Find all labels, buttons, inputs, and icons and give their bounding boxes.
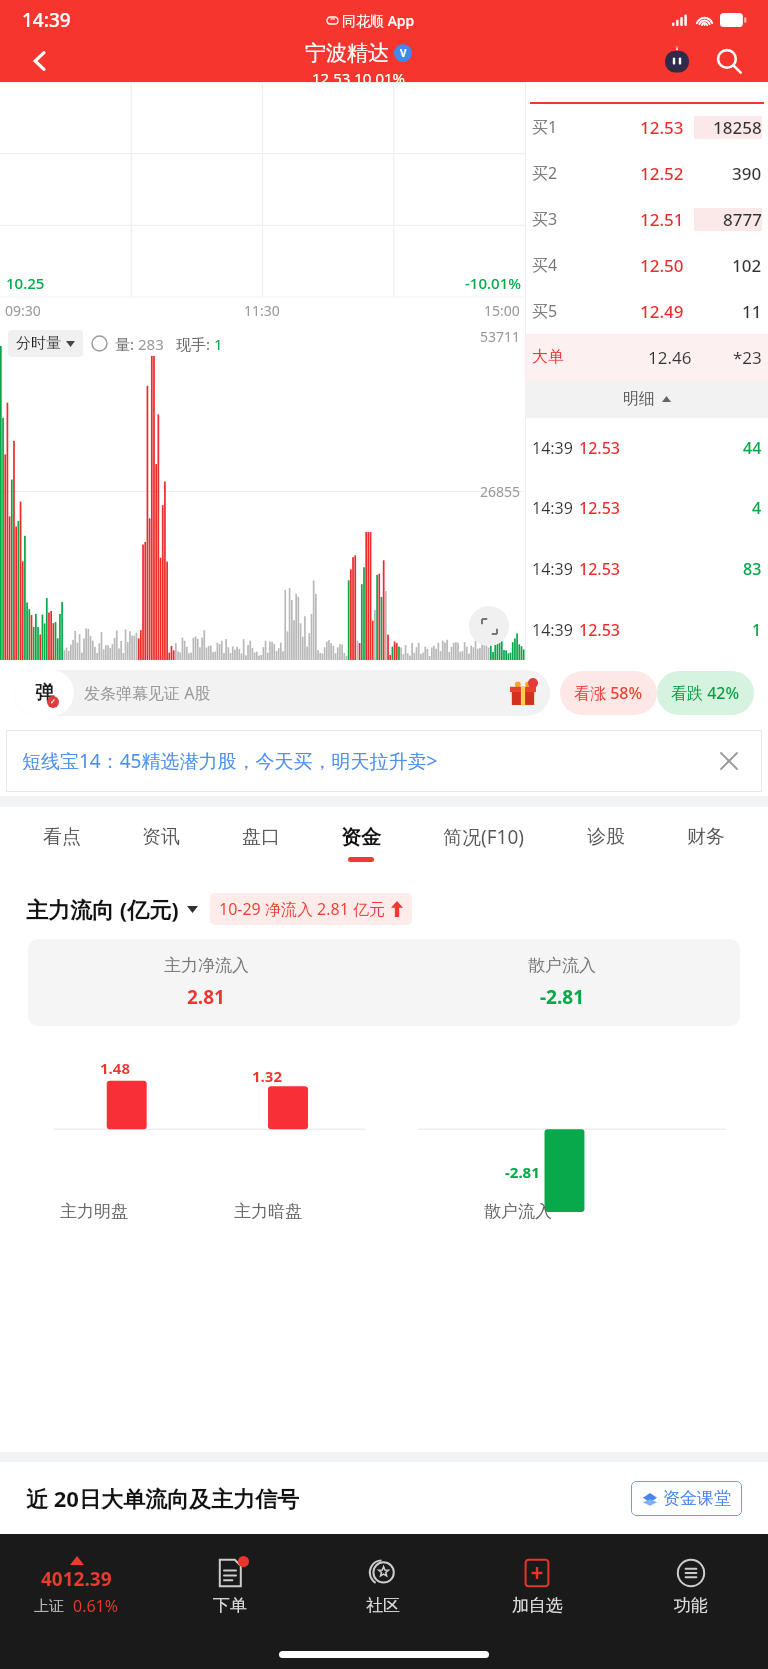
button[interactable]: Fullscreen — [469, 606, 509, 646]
staticText: 14:39 — [532, 558, 573, 580]
staticText: 11 — [742, 300, 762, 323]
button[interactable]: 加自选 — [460, 1534, 614, 1639]
staticText: 0.61% — [73, 1595, 119, 1617]
button[interactable]: Help — [91, 335, 108, 352]
staticText: 功能 — [674, 1595, 708, 1616]
staticText: 买5 — [532, 300, 558, 322]
staticText: 短线宝14：45精选潜力股，今天买，明天拉升卖> — [22, 748, 438, 774]
staticText: 26855 — [480, 482, 521, 501]
staticText: 看点 — [43, 825, 81, 849]
button[interactable]: 盘口 — [211, 807, 311, 879]
staticText: 发条弹幕见证 A股 — [84, 682, 211, 704]
staticText: 1 — [752, 619, 762, 641]
staticText: -2.81 — [540, 984, 585, 1010]
staticText: 看涨 58% — [574, 682, 643, 704]
button[interactable]: 明细 — [526, 380, 768, 418]
staticText: 财务 — [687, 825, 725, 849]
staticText: 看跌 42% — [671, 682, 740, 704]
staticText: 83 — [743, 558, 762, 580]
button[interactable]: 14:39 — [526, 538, 768, 599]
button[interactable]: 买5 — [526, 288, 768, 334]
button[interactable]: 功能 — [614, 1534, 768, 1639]
staticText: 大单 — [532, 347, 564, 367]
button[interactable]: 大单 — [526, 334, 768, 380]
staticText: 4012.39 — [41, 1566, 112, 1592]
staticText: 资金 — [341, 825, 381, 850]
button[interactable]: 4012.39 — [0, 1534, 153, 1639]
staticText: 390 — [732, 162, 762, 185]
staticText: 资金课堂 — [663, 1488, 731, 1509]
staticText: 主力流向 (亿元) — [26, 894, 179, 924]
staticText: 10.25 — [6, 273, 45, 293]
staticText: 4 — [752, 497, 762, 519]
button[interactable]: 买2 — [526, 150, 768, 196]
button[interactable]: 弹 — [14, 670, 550, 716]
button[interactable]: 社区 — [306, 1534, 460, 1639]
button[interactable]: 看跌 42% — [657, 671, 754, 715]
staticText: 283 — [138, 334, 164, 354]
staticText: 12.46 — [648, 346, 692, 369]
staticText: 11:30 — [244, 301, 280, 320]
button[interactable]: 10-29 净流入 2.81 亿元 — [210, 893, 412, 925]
staticText: 12.53 — [579, 619, 620, 641]
staticText: 14:39 — [532, 437, 573, 459]
button[interactable]: 看点 — [12, 807, 111, 879]
staticText: 资讯 — [142, 825, 180, 849]
button[interactable]: 简况(F10) — [411, 807, 556, 879]
button[interactable]: 短线宝14：45精选潜力股，今天买，明天拉升卖> — [6, 730, 762, 792]
button[interactable]: 资金 — [311, 807, 411, 879]
button[interactable]: 诊股 — [556, 807, 656, 879]
button[interactable]: 主力流向 (亿元) — [26, 894, 198, 924]
button[interactable]: 资金课堂 — [631, 1481, 742, 1516]
staticText: 12.50 — [640, 254, 684, 277]
button[interactable]: 分时量 — [8, 330, 83, 357]
staticText: 8777 — [723, 208, 762, 231]
staticText: 12.53 10.01% — [312, 68, 406, 82]
button[interactable]: Search — [708, 40, 750, 82]
staticText: 盘口 — [242, 825, 280, 849]
staticText: 诊股 — [587, 825, 625, 849]
staticText: 加自选 — [512, 1595, 563, 1616]
staticText: 明细 — [623, 389, 655, 409]
staticText: 社区 — [366, 1595, 400, 1616]
staticText: 12.53 — [579, 497, 620, 519]
staticText: 主力净流入 — [164, 955, 249, 976]
staticText: 12.51 — [640, 208, 684, 231]
staticText: 12.49 — [640, 300, 684, 323]
staticText: 1 — [214, 334, 223, 354]
staticText: 1.48 — [100, 1058, 130, 1078]
staticText: 主力明盘 — [60, 1201, 128, 1222]
staticText: 上证 — [34, 1597, 64, 1616]
button[interactable]: AI assistant — [656, 40, 698, 82]
button[interactable]: 14:39 — [526, 418, 768, 478]
staticText: 分时量 — [16, 334, 61, 353]
button[interactable]: Back — [18, 40, 62, 82]
staticText: 主力暗盘 — [234, 1201, 302, 1222]
staticText: 44 — [743, 437, 762, 459]
button[interactable]: 下单 — [153, 1534, 306, 1639]
staticText: 宁波精达 — [305, 40, 389, 66]
staticText: 09:30 — [5, 301, 41, 320]
button[interactable]: 看涨 58% — [560, 671, 657, 715]
staticText: 近 20日大单流向及主力信号 — [26, 1483, 299, 1513]
button[interactable]: 主力净流入 — [28, 939, 740, 1026]
button[interactable]: 14:39 — [526, 478, 768, 538]
staticText: 下单 — [213, 1595, 247, 1616]
staticText: 14:39 — [22, 7, 71, 33]
button[interactable]: 资讯 — [111, 807, 211, 879]
staticText: V — [400, 46, 407, 60]
staticText: 同花顺 App — [342, 11, 415, 30]
button[interactable]: Close — [712, 744, 746, 778]
staticText: 14:39 — [532, 497, 573, 519]
button[interactable]: 财务 — [656, 807, 756, 879]
staticText: 散户流入 — [484, 1201, 552, 1222]
staticText: 散户流入 — [528, 955, 596, 976]
button[interactable]: 买3 — [526, 196, 768, 242]
staticText: 18258 — [713, 116, 762, 139]
staticText: 2.81 — [187, 984, 225, 1010]
button[interactable]: 买4 — [526, 242, 768, 288]
staticText: 10-29 净流入 2.81 亿元 — [219, 898, 385, 920]
button[interactable]: 14:39 — [526, 599, 768, 660]
staticText: 弹 — [35, 681, 54, 705]
button[interactable]: 买1 — [526, 104, 768, 150]
